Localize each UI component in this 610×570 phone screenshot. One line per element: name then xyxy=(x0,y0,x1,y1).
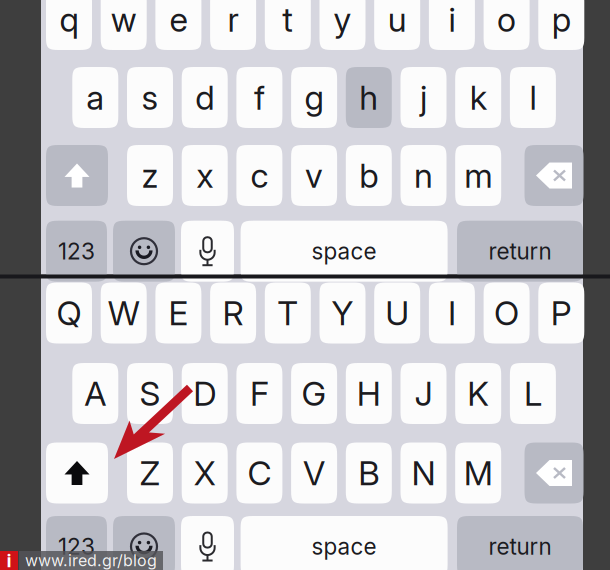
staticText: w xyxy=(111,0,137,40)
staticText: a xyxy=(86,77,104,118)
button[interactable]: Shift xyxy=(46,145,108,206)
staticText: W xyxy=(108,293,140,333)
button[interactable]: P xyxy=(538,282,584,343)
staticText: L xyxy=(524,373,542,414)
button[interactable]: U xyxy=(374,282,420,343)
button[interactable]: b xyxy=(346,145,392,206)
staticText: H xyxy=(357,373,381,414)
button[interactable]: M xyxy=(455,442,501,503)
button[interactable]: w xyxy=(101,0,147,50)
button[interactable]: r xyxy=(210,0,256,50)
button[interactable]: E xyxy=(155,282,201,343)
button[interactable]: d xyxy=(182,67,228,128)
button[interactable]: l xyxy=(510,67,556,128)
button[interactable]: J xyxy=(400,363,446,424)
button[interactable]: m xyxy=(455,145,501,206)
staticText: space xyxy=(312,237,377,265)
button[interactable]: p xyxy=(538,0,584,50)
button[interactable]: H xyxy=(346,363,392,424)
staticText: www.ired.gr/blog xyxy=(25,551,157,570)
button[interactable]: x xyxy=(182,145,228,206)
staticText: X xyxy=(194,453,216,493)
button[interactable]: Dictate xyxy=(181,516,234,570)
button[interactable]: e xyxy=(155,0,201,50)
staticText: p xyxy=(552,0,571,40)
staticText: j xyxy=(420,77,427,118)
button[interactable]: o xyxy=(484,0,530,50)
button[interactable]: V xyxy=(291,442,337,503)
staticText: Z xyxy=(139,453,160,493)
staticText: space xyxy=(312,533,377,560)
button[interactable]: W xyxy=(101,282,147,343)
button[interactable]: C xyxy=(236,442,282,503)
button[interactable]: Shift xyxy=(46,442,108,503)
button[interactable]: s xyxy=(127,67,173,128)
staticText: i xyxy=(6,549,11,570)
button[interactable]: Delete xyxy=(524,442,583,503)
staticText: E xyxy=(168,293,188,333)
button[interactable]: Q xyxy=(46,282,92,343)
button[interactable]: k xyxy=(455,67,501,128)
button[interactable]: Emoji xyxy=(113,516,175,570)
staticText: return xyxy=(488,533,551,560)
button[interactable]: T xyxy=(265,282,311,343)
staticText: G xyxy=(302,373,327,414)
button[interactable]: O xyxy=(484,282,530,343)
staticText: 123 xyxy=(58,237,95,265)
button[interactable]: S xyxy=(127,363,173,424)
staticText: l xyxy=(529,77,536,118)
button[interactable]: return xyxy=(457,221,583,282)
staticText: o xyxy=(497,0,516,40)
button[interactable]: j xyxy=(400,67,446,128)
button[interactable]: N xyxy=(400,442,446,503)
button[interactable]: z xyxy=(127,145,173,206)
staticText: Q xyxy=(56,293,81,333)
staticText: r xyxy=(228,0,239,40)
button[interactable]: a xyxy=(72,67,118,128)
button[interactable]: I xyxy=(429,282,475,343)
button[interactable]: L xyxy=(510,363,556,424)
button[interactable]: Z xyxy=(127,442,173,503)
button[interactable]: X xyxy=(182,442,228,503)
button[interactable]: G xyxy=(291,363,337,424)
button[interactable]: 123 xyxy=(46,516,107,570)
button[interactable]: Dictate xyxy=(181,221,234,282)
button[interactable]: v xyxy=(291,145,337,206)
button[interactable]: B xyxy=(346,442,392,503)
button[interactable]: y xyxy=(319,0,365,50)
button[interactable]: i xyxy=(429,0,475,50)
staticText: s xyxy=(141,77,158,118)
staticText: u xyxy=(388,0,407,40)
button[interactable]: t xyxy=(265,0,311,50)
button[interactable]: n xyxy=(400,145,446,206)
staticText: f xyxy=(254,77,265,118)
button[interactable]: space xyxy=(241,221,448,282)
button[interactable]: g xyxy=(291,67,337,128)
button[interactable]: q xyxy=(46,0,92,50)
button[interactable]: D xyxy=(182,363,228,424)
staticText: k xyxy=(470,77,487,118)
staticText: U xyxy=(385,293,409,333)
button[interactable]: Delete xyxy=(524,145,583,206)
staticText: m xyxy=(464,155,492,196)
button[interactable]: f xyxy=(236,67,282,128)
button[interactable]: Y xyxy=(319,282,365,343)
button[interactable]: A xyxy=(72,363,118,424)
staticText: b xyxy=(359,155,378,196)
button[interactable]: F xyxy=(236,363,282,424)
staticText: h xyxy=(359,77,378,118)
button[interactable]: K xyxy=(455,363,501,424)
button[interactable]: return xyxy=(457,516,583,570)
staticText: e xyxy=(169,0,187,40)
button[interactable]: R xyxy=(210,282,256,343)
staticText: F xyxy=(250,373,269,414)
button[interactable]: h xyxy=(346,67,392,128)
staticText: V xyxy=(303,453,325,493)
staticText: I xyxy=(448,293,456,333)
button[interactable]: Emoji xyxy=(113,221,175,282)
button[interactable]: c xyxy=(236,145,282,206)
button[interactable]: space xyxy=(241,516,448,570)
button[interactable]: 123 xyxy=(46,221,107,282)
staticText: t xyxy=(282,0,293,40)
button[interactable]: u xyxy=(374,0,420,50)
